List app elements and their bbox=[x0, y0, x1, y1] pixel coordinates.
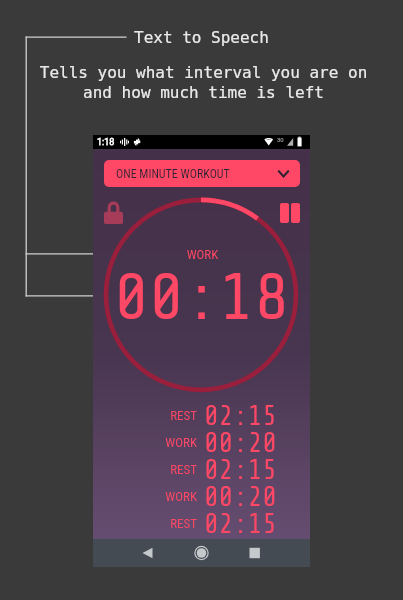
staticText: ONE MINUTE WORKOUT bbox=[116, 167, 230, 181]
staticText: WORK bbox=[93, 435, 197, 449]
staticText: Tells you what interval you are on and h… bbox=[8, 63, 399, 109]
button[interactable]: Home bbox=[191, 539, 213, 567]
button[interactable]: REST bbox=[93, 509, 310, 536]
staticText: 00:20 bbox=[204, 482, 277, 509]
staticText: 02:15 bbox=[204, 509, 277, 536]
staticText: WORK bbox=[93, 489, 197, 503]
button[interactable]: REST bbox=[93, 455, 310, 482]
button[interactable]: WORK bbox=[93, 482, 310, 509]
staticText: 02:15 bbox=[204, 401, 277, 428]
button[interactable]: REST bbox=[93, 401, 310, 428]
staticText: 1:18 bbox=[97, 137, 115, 148]
staticText: 00:18 bbox=[102, 261, 301, 319]
staticText: Text to Speech bbox=[134, 28, 269, 47]
staticText: WORK bbox=[103, 247, 302, 261]
staticText: 02:15 bbox=[204, 455, 277, 482]
staticText: REST bbox=[93, 462, 197, 476]
button[interactable]: Recent apps bbox=[244, 539, 266, 567]
staticText: REST bbox=[93, 516, 197, 530]
staticText: 30 bbox=[277, 136, 284, 143]
button[interactable]: ONE MINUTE WORKOUT bbox=[104, 160, 300, 187]
staticText: 00:20 bbox=[204, 428, 277, 455]
button[interactable]: Lock bbox=[104, 201, 123, 224]
button[interactable]: Back bbox=[137, 539, 159, 567]
button[interactable]: Pause bbox=[280, 203, 300, 223]
button[interactable]: WORK bbox=[93, 428, 310, 455]
staticText: REST bbox=[93, 408, 197, 422]
